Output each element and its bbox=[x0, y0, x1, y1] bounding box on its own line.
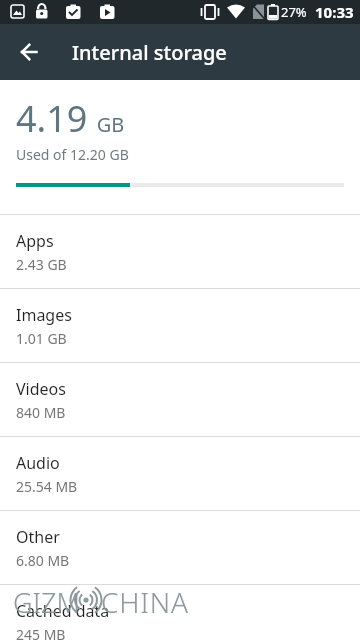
staticText: CHINA bbox=[101, 583, 189, 621]
button[interactable]: Images bbox=[0, 289, 360, 362]
staticText: 4.19 GB bbox=[16, 94, 125, 143]
staticText: Cached data bbox=[16, 600, 110, 622]
staticText: 840 MB bbox=[16, 403, 66, 422]
staticText: Audio bbox=[16, 452, 60, 474]
button[interactable]: Cached data bbox=[0, 585, 360, 640]
staticText: 245 MB bbox=[16, 625, 66, 640]
button[interactable]: Apps bbox=[0, 215, 360, 288]
staticText: 1.01 GB bbox=[16, 329, 67, 348]
button[interactable]: Videos bbox=[0, 363, 360, 436]
staticText: Used of 12.20 GB bbox=[16, 145, 129, 164]
staticText: GIZM bbox=[13, 584, 81, 621]
button[interactable] bbox=[13, 37, 43, 67]
staticText: Internal storage bbox=[72, 39, 227, 66]
staticText: Videos bbox=[16, 378, 66, 400]
staticText: 27% bbox=[281, 3, 307, 21]
staticText: 10:33 bbox=[315, 2, 354, 22]
staticText: 2.43 GB bbox=[16, 255, 67, 274]
staticText: Other bbox=[16, 526, 60, 548]
staticText: 6.80 MB bbox=[16, 551, 70, 570]
button[interactable]: Audio bbox=[0, 437, 360, 510]
staticText: Apps bbox=[16, 230, 54, 252]
button[interactable]: Other bbox=[0, 511, 360, 584]
staticText: Images bbox=[16, 304, 72, 326]
staticText: 25.54 MB bbox=[16, 477, 78, 496]
